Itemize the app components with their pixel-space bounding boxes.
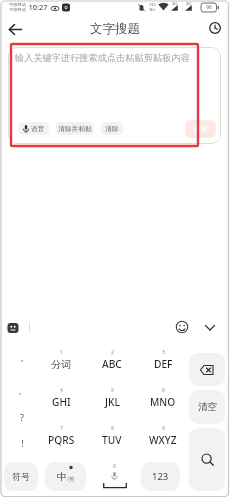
staticText: 输入关键字进行搜索或点击粘贴剪贴板内容 bbox=[15, 52, 190, 64]
button[interactable] bbox=[175, 320, 189, 334]
staticText: 5 bbox=[111, 387, 114, 394]
staticText: /英 bbox=[67, 475, 75, 483]
button[interactable] bbox=[4, 18, 26, 40]
staticText: JKL bbox=[105, 395, 120, 409]
staticText: PQRS bbox=[48, 433, 75, 447]
staticText: 。 bbox=[18, 385, 27, 396]
staticText: 7 bbox=[60, 425, 63, 432]
staticText: 4G bbox=[186, 1, 191, 6]
staticText: GHI bbox=[52, 395, 71, 409]
staticText: 1 bbox=[60, 349, 63, 356]
staticText: 4G bbox=[172, 1, 177, 6]
staticText: TUV bbox=[102, 433, 122, 447]
staticText: 123 bbox=[152, 470, 169, 483]
staticText: 中国移动 bbox=[9, 7, 26, 12]
staticText: 9 bbox=[162, 425, 165, 432]
staticText: ’ bbox=[21, 357, 23, 369]
button[interactable]: WXYZ bbox=[138, 433, 188, 447]
button[interactable] bbox=[205, 18, 225, 38]
button[interactable]: 0 bbox=[90, 460, 138, 492]
staticText: MNO bbox=[150, 395, 176, 409]
staticText: 清除并粘贴 bbox=[58, 124, 92, 133]
staticText: ! bbox=[21, 437, 24, 449]
staticText: 中 bbox=[57, 470, 67, 483]
button[interactable]: MNO bbox=[138, 395, 188, 409]
button[interactable]: 中 bbox=[45, 462, 86, 491]
button[interactable]: 语音 bbox=[19, 122, 49, 135]
button[interactable]: 输入关键字进行搜索或点击粘贴剪贴板内容 bbox=[8, 47, 221, 144]
staticText: 分词 bbox=[51, 358, 72, 371]
button[interactable]: ! bbox=[8, 436, 36, 449]
button[interactable]: ? bbox=[8, 410, 36, 423]
staticText: ? bbox=[20, 411, 24, 423]
button[interactable]: 分词 bbox=[36, 357, 86, 371]
button[interactable]: 清除 bbox=[101, 122, 123, 135]
staticText: 清空 bbox=[198, 401, 217, 413]
button[interactable]: ABC bbox=[87, 357, 137, 371]
button[interactable] bbox=[7, 322, 19, 334]
staticText: ABC bbox=[102, 357, 122, 371]
button[interactable]: ’ bbox=[8, 356, 36, 369]
button[interactable]: JKL bbox=[87, 395, 137, 409]
staticText: 10:27 bbox=[28, 2, 48, 12]
staticText: 96 bbox=[206, 4, 212, 11]
staticText: 3 bbox=[162, 349, 165, 356]
button[interactable]: 清除并粘贴 bbox=[56, 122, 94, 135]
staticText: 清除 bbox=[105, 124, 119, 133]
button[interactable]: PQRS bbox=[36, 433, 86, 447]
staticText: 中国移动 bbox=[9, 2, 26, 7]
button[interactable]: 清空 bbox=[189, 390, 225, 424]
staticText: 符号 bbox=[12, 471, 30, 482]
button[interactable]: 。 bbox=[8, 384, 36, 397]
staticText: 8 bbox=[111, 425, 114, 432]
staticText: WXYZ bbox=[149, 433, 177, 447]
staticText: 2 bbox=[111, 349, 114, 356]
staticText: 搜索 bbox=[193, 125, 208, 134]
button[interactable]: 搜索 bbox=[185, 120, 216, 138]
button[interactable]: 123 bbox=[141, 462, 180, 491]
button[interactable] bbox=[189, 353, 225, 386]
button[interactable]: DEF bbox=[138, 357, 188, 371]
button[interactable]: GHI bbox=[36, 395, 86, 409]
button[interactable]: TUV bbox=[87, 433, 137, 447]
button[interactable] bbox=[189, 428, 225, 491]
staticText: 文字搜题 bbox=[90, 21, 140, 37]
staticText: DEF bbox=[154, 357, 173, 371]
staticText: 6 bbox=[162, 387, 165, 394]
staticText: 4 bbox=[60, 387, 63, 394]
staticText: 742 bbox=[149, 2, 156, 7]
staticText: B/s bbox=[149, 7, 156, 12]
staticText: 0 bbox=[113, 463, 116, 470]
button[interactable] bbox=[203, 321, 217, 334]
button[interactable]: 符号 bbox=[4, 462, 38, 491]
staticText: 语音 bbox=[31, 124, 45, 133]
